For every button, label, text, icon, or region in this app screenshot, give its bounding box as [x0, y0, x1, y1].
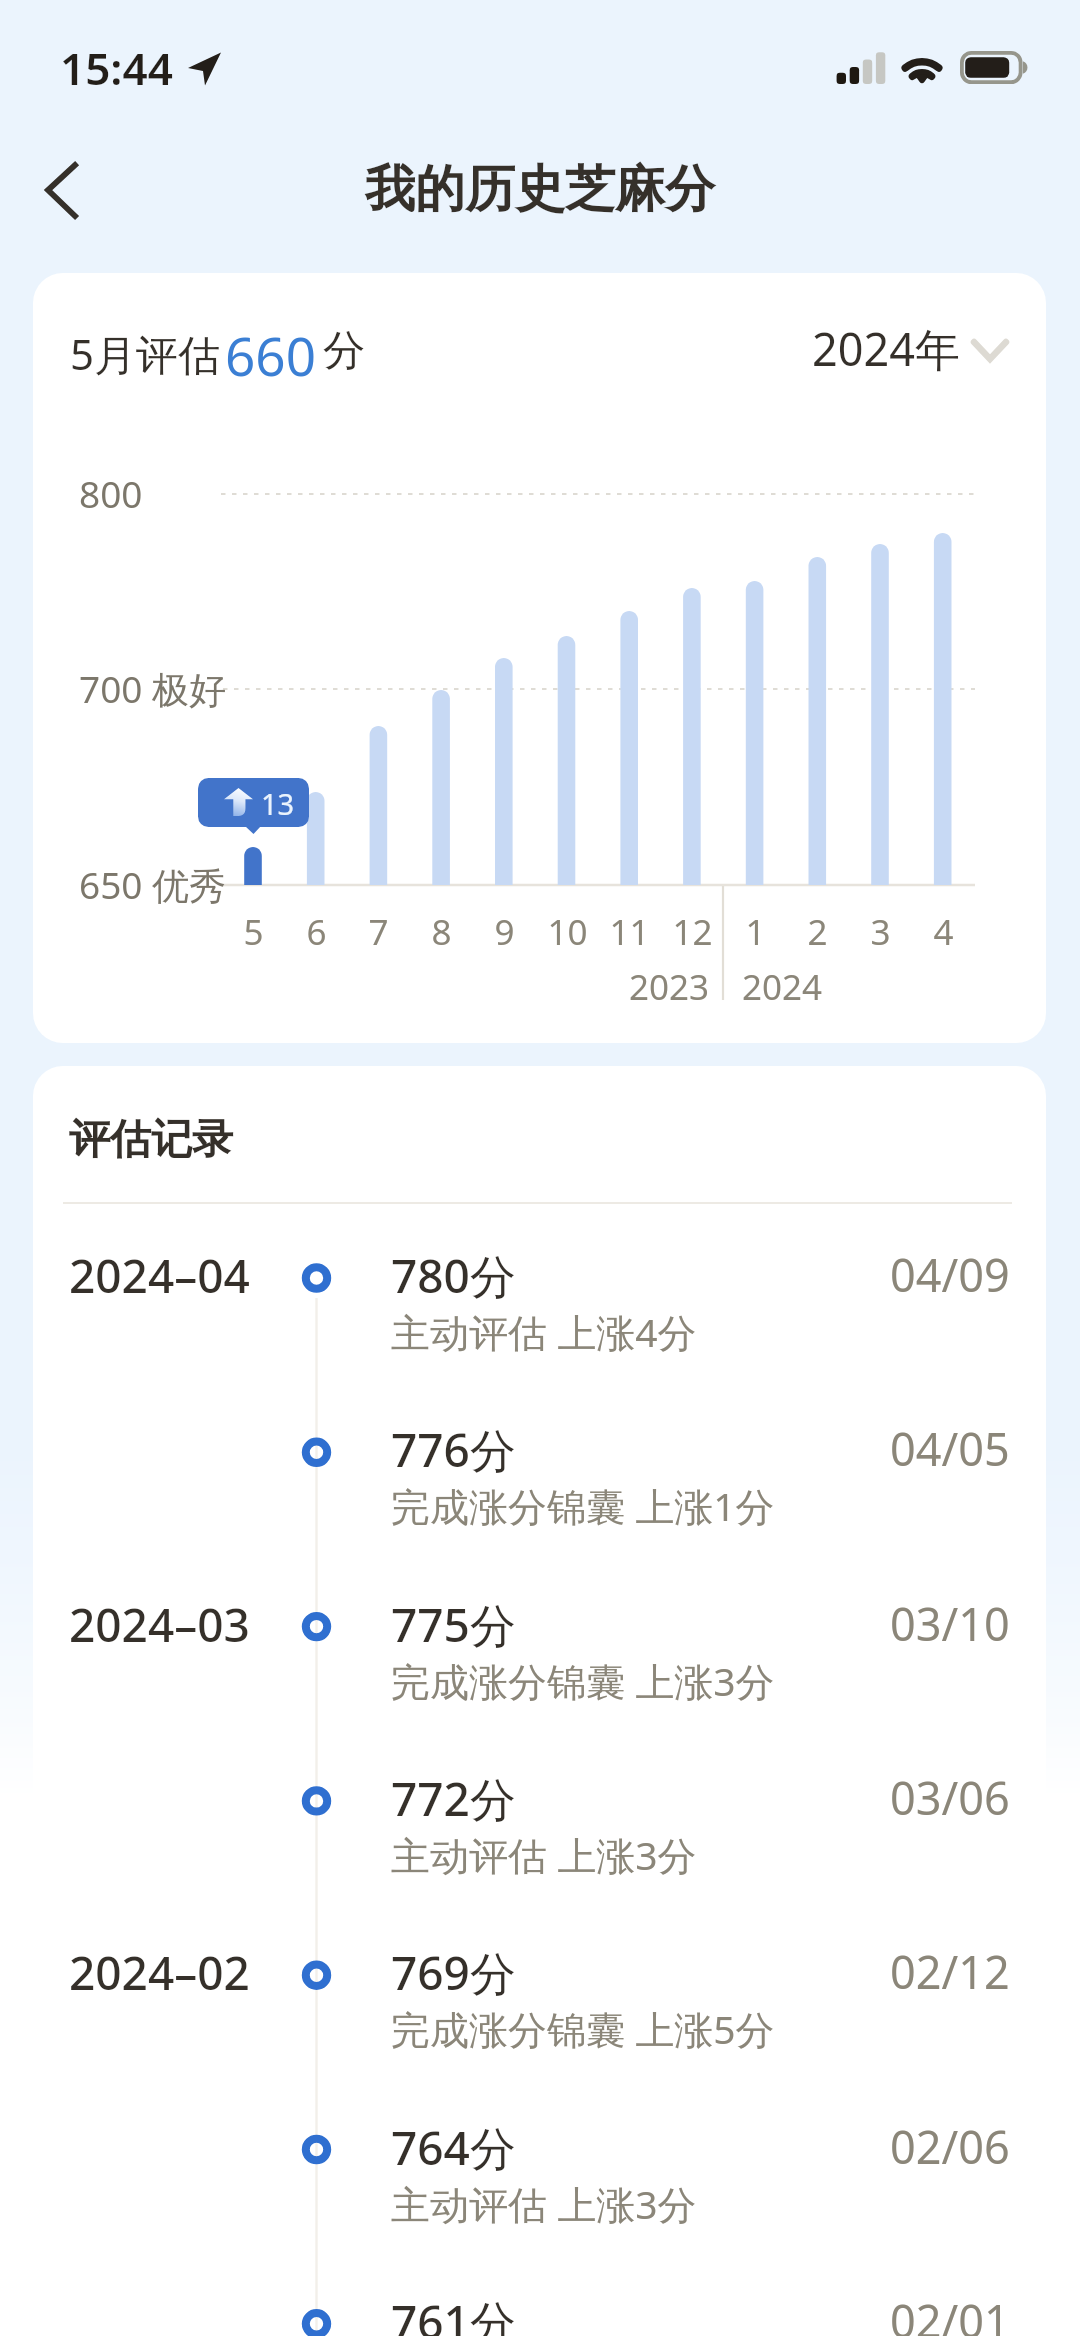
button[interactable]: Back [20, 145, 110, 235]
staticText: 13 [261, 784, 295, 823]
staticText: 8 [431, 908, 452, 956]
staticText: 769分 [391, 1941, 516, 2004]
staticText: 7 [368, 908, 389, 956]
staticText: 03/06 [890, 1767, 1010, 1828]
staticText: 2024年 [812, 318, 960, 379]
staticText: 3 [870, 908, 891, 956]
staticText: 6 [306, 908, 327, 956]
staticText: 2 [807, 908, 828, 956]
staticText: 9 [494, 908, 515, 956]
staticText: 660 [225, 319, 316, 391]
staticText: 2024–03 [69, 1593, 250, 1656]
staticText: 780分 [391, 1244, 516, 1307]
staticText: 03/10 [890, 1593, 1010, 1654]
staticText: 800 [79, 468, 143, 518]
staticText: 评估记录 [69, 1114, 233, 1166]
staticText: 5月评估 [70, 325, 221, 382]
staticText: 2024 [742, 963, 823, 1011]
staticText: 650 优秀 [79, 859, 227, 910]
staticText: 主动评估 上涨4分 [391, 1305, 697, 1358]
staticText: 5 [243, 908, 264, 956]
staticText: 4 [933, 908, 954, 956]
staticText: 775分 [391, 1593, 516, 1656]
staticText: 2023 [629, 963, 710, 1011]
staticText: 02/12 [890, 1941, 1010, 2002]
staticText: 02/01 [890, 2290, 1010, 2336]
staticText: 761分 [391, 2290, 516, 2336]
staticText: 分 [323, 325, 365, 378]
staticText: 主动评估 上涨3分 [391, 1828, 697, 1881]
staticText: 11 [609, 908, 650, 956]
staticText: 04/09 [890, 1244, 1010, 1305]
staticText: 1 [745, 908, 766, 956]
staticText: 完成涨分锦囊 上涨3分 [391, 1654, 775, 1707]
staticText: 2024–02 [69, 1941, 250, 2004]
staticText: 12 [672, 908, 713, 956]
button[interactable]: 2024年 [812, 318, 1010, 379]
staticText: 764分 [391, 2116, 516, 2179]
staticText: 700 极好 [79, 663, 227, 714]
staticText: 15:44 [60, 38, 173, 98]
staticText: 主动评估 上涨3分 [391, 2177, 697, 2230]
staticText: 02/06 [890, 2116, 1010, 2177]
staticText: 776分 [391, 1418, 516, 1481]
staticText: 04/05 [890, 1418, 1010, 1479]
staticText: 10 [547, 908, 588, 956]
staticText: 完成涨分锦囊 上涨5分 [391, 2002, 775, 2055]
staticText: 2024–04 [69, 1244, 250, 1307]
staticText: 我的历史芝麻分 [365, 158, 715, 221]
staticText: 完成涨分锦囊 上涨1分 [391, 1479, 775, 1532]
staticText: 772分 [391, 1767, 516, 1830]
